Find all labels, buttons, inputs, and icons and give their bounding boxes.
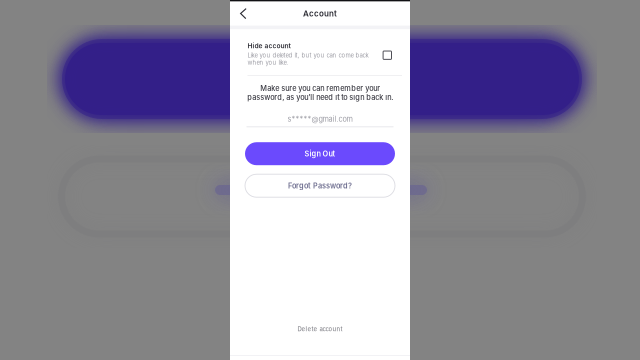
button[interactable]: Forgot Password?	[245, 174, 395, 197]
staticText: s*****@gmail.com	[287, 115, 352, 123]
staticText: Account	[303, 9, 337, 18]
staticText: Like you deleted it, but you can come ba…	[247, 52, 368, 66]
staticText: Hide account	[247, 42, 290, 50]
staticText: Delete account	[297, 325, 342, 333]
button[interactable]: Delete account	[230, 321, 410, 337]
staticText: Forgot Password?	[288, 181, 352, 190]
button[interactable]: Back	[232, 3, 254, 25]
staticText: Make sure you can remember your password…	[247, 84, 393, 102]
staticText: Sign Out	[304, 149, 335, 158]
button[interactable]: Sign Out	[245, 142, 395, 165]
button[interactable]: Hide account	[230, 29, 410, 75]
